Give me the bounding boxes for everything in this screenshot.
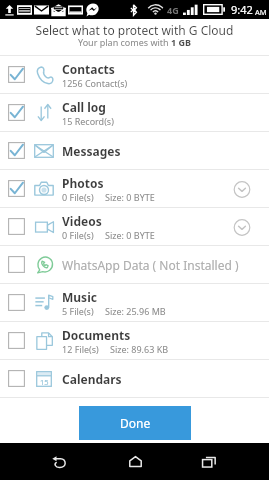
staticText: 9:42 (231, 2, 253, 17)
button[interactable]: 15 (0, 360, 269, 398)
button[interactable]: Photos (0, 170, 269, 208)
staticText: Call log (62, 99, 106, 115)
staticText: 4G (167, 4, 179, 16)
button[interactable]: Recent apps (187, 443, 231, 480)
staticText: Select what to protect with G Cloud (0, 22, 269, 38)
staticText: 15 Record(s) (62, 115, 114, 127)
button[interactable]: Music (0, 284, 269, 322)
staticText: Size: 25.96 MB (105, 305, 166, 317)
button[interactable]: Expand (229, 214, 255, 240)
staticText: WhatsApp Data ( Not Installed ) (62, 257, 239, 273)
staticText: Done (120, 415, 151, 431)
button[interactable]: Back (37, 443, 81, 480)
staticText: Size: 0 BYTE (105, 191, 155, 203)
button[interactable]: Expand (229, 176, 255, 202)
staticText: Your plan comes with 1 GB (0, 36, 269, 48)
button[interactable]: Contacts (0, 56, 269, 94)
staticText: Contacts (62, 61, 115, 77)
button[interactable]: Home (113, 443, 157, 480)
button[interactable]: Done (79, 406, 191, 440)
staticText: Messages (62, 143, 121, 159)
staticText: Size: 89.63 KB (110, 343, 169, 355)
staticText: 5 File(s) (62, 305, 94, 317)
staticText: Photos (62, 175, 104, 191)
staticText: AM (255, 7, 267, 17)
staticText: Music (62, 289, 97, 305)
staticText: 15 (40, 377, 49, 387)
staticText: Videos (62, 213, 102, 229)
staticText: Documents (62, 327, 131, 343)
button[interactable]: Documents (0, 322, 269, 360)
staticText: Calendars (62, 371, 122, 387)
staticText: Size: 0 BYTE (105, 229, 155, 241)
button[interactable]: Messages (0, 132, 269, 170)
button[interactable]: Videos (0, 208, 269, 246)
button[interactable]: Call log (0, 94, 269, 132)
staticText: 0 File(s) (62, 229, 94, 241)
button[interactable]: WhatsApp Data ( Not Installed ) (0, 246, 269, 284)
staticText: 1256 Contact(s) (62, 77, 128, 89)
staticText: 12 File(s) (62, 343, 99, 355)
staticText: 0 File(s) (62, 191, 94, 203)
